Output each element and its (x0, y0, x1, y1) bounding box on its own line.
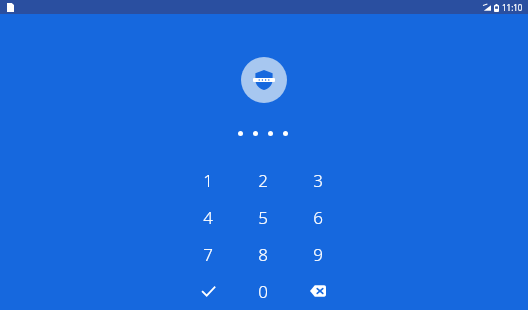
staticText: 7 (203, 243, 213, 266)
button[interactable]: 9 (297, 237, 339, 271)
button[interactable]: Confirm (187, 274, 229, 308)
button[interactable]: 2 (242, 163, 284, 197)
button[interactable]: 3 (297, 163, 339, 197)
button[interactable]: Backspace (297, 274, 339, 308)
staticText: 11:10 (502, 2, 523, 13)
button[interactable]: 5 (242, 200, 284, 234)
button[interactable]: 4 (187, 200, 229, 234)
button[interactable]: 1 (187, 163, 229, 197)
staticText: 0 (258, 280, 268, 303)
button[interactable]: 0 (242, 274, 284, 308)
staticText: 1 (203, 169, 213, 192)
staticText: 9 (313, 243, 323, 266)
staticText: 3 (313, 169, 323, 192)
button[interactable]: 7 (187, 237, 229, 271)
staticText: 5 (258, 206, 268, 229)
staticText: 2 (258, 169, 268, 192)
button[interactable]: Profile (241, 57, 287, 103)
button[interactable]: 6 (297, 200, 339, 234)
staticText: 4 (203, 206, 213, 229)
staticText: 6 (313, 206, 323, 229)
staticText: 8 (258, 243, 268, 266)
button[interactable]: 8 (242, 237, 284, 271)
